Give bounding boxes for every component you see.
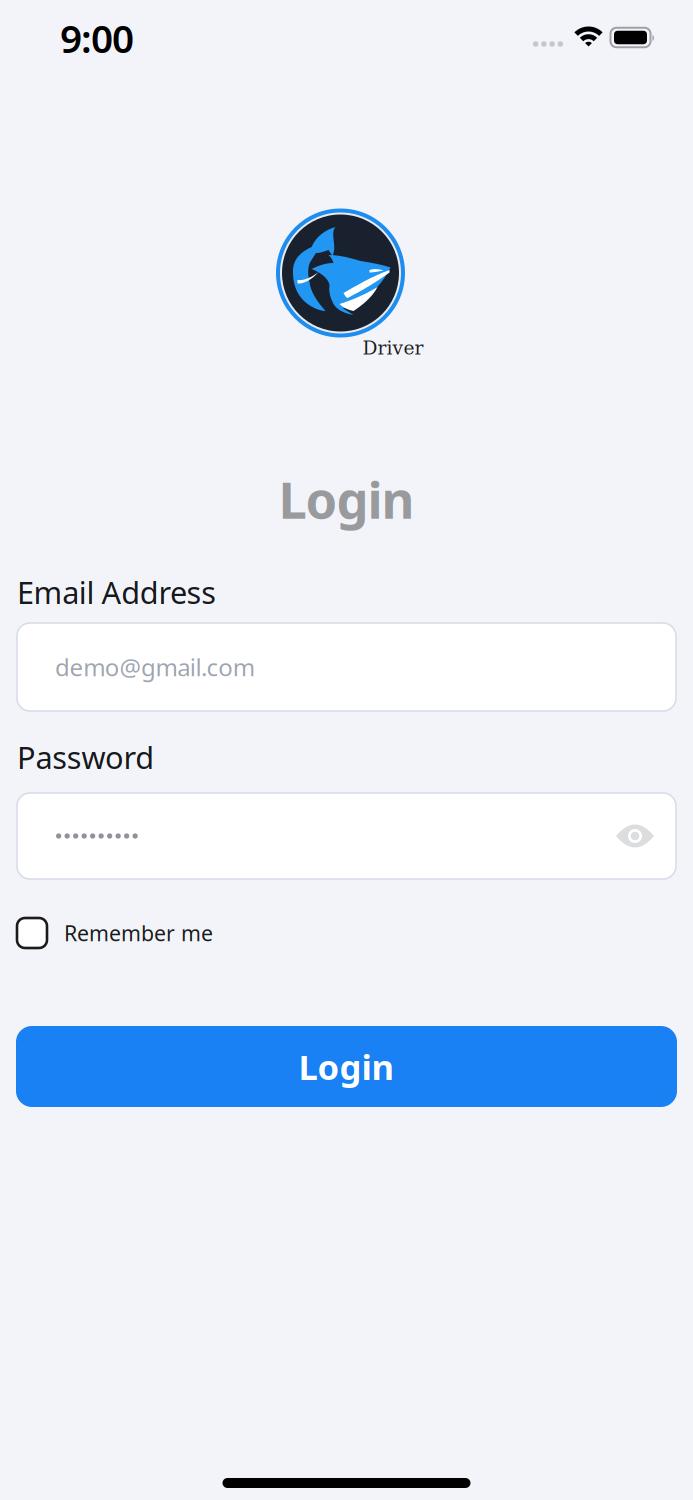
staticText: Login <box>298 1043 394 1089</box>
staticText: Email Address <box>17 572 216 612</box>
staticText: Login <box>278 465 414 533</box>
staticText: Password <box>17 737 154 777</box>
staticText: demo@gmail.com <box>55 651 255 683</box>
staticText: Remember me <box>64 919 213 947</box>
staticText: Driver <box>362 337 423 359</box>
button[interactable]: Remember me <box>17 918 213 948</box>
button[interactable]: Show password <box>616 824 676 848</box>
staticText: 9:00 <box>60 12 134 64</box>
button[interactable]: Login <box>16 1026 677 1107</box>
